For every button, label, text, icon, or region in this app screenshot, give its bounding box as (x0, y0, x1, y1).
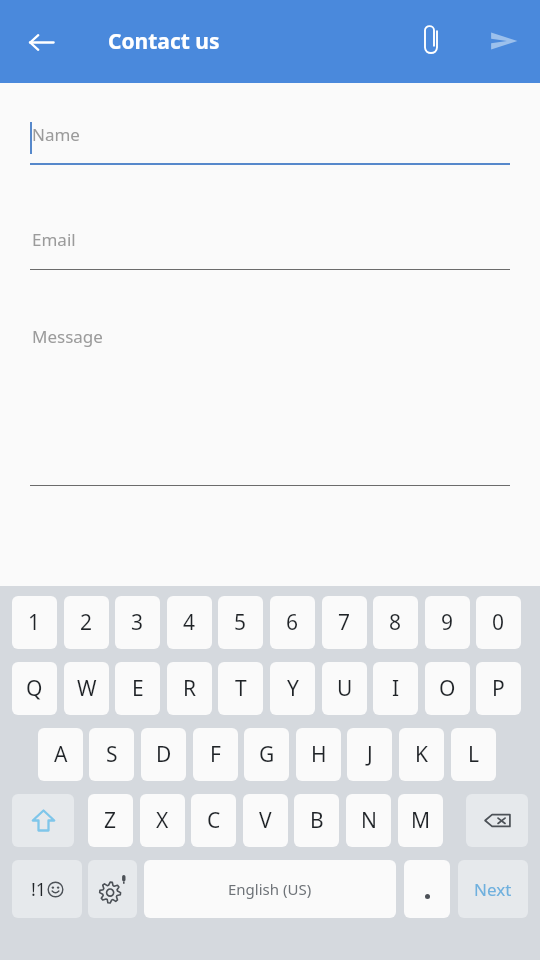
staticText: L (468, 740, 480, 769)
button[interactable]: Name (30, 105, 510, 167)
button[interactable]: 7 (322, 596, 367, 649)
staticText: S (106, 740, 118, 769)
button[interactable]: 2 (64, 596, 109, 649)
staticText: Email (32, 228, 76, 251)
staticText: Z (104, 806, 117, 835)
button[interactable]: Y (270, 662, 315, 715)
button[interactable]: C (191, 794, 236, 847)
button[interactable]: T (218, 662, 263, 715)
staticText: A (54, 740, 68, 769)
staticText: X (156, 806, 169, 835)
button[interactable]: Next (458, 860, 528, 918)
button[interactable]: Email (30, 210, 510, 272)
button[interactable]: Attach file (403, 13, 459, 69)
button[interactable]: K (399, 728, 444, 781)
button[interactable]: Send (476, 13, 532, 69)
button[interactable]: Message (30, 315, 510, 487)
button[interactable]: A (38, 728, 83, 781)
staticText: R (183, 674, 197, 703)
staticText: C (207, 806, 221, 835)
button[interactable]: U (322, 662, 367, 715)
staticText: !1 (31, 877, 47, 902)
staticText: 8 (389, 608, 402, 637)
staticText: 5 (234, 608, 247, 637)
button[interactable]: 0 (476, 596, 521, 649)
button[interactable]: English (US) (144, 860, 396, 918)
staticText: English (US) (228, 879, 312, 899)
button[interactable]: V (243, 794, 288, 847)
staticText: G (259, 740, 275, 769)
button[interactable]: Period (404, 860, 450, 918)
staticText: M (411, 806, 431, 835)
button[interactable]: 4 (167, 596, 212, 649)
staticText: Q (26, 674, 43, 703)
staticText: B (310, 806, 324, 835)
button[interactable]: Shift (12, 794, 74, 847)
button[interactable]: W (64, 662, 109, 715)
button[interactable]: 3 (115, 596, 160, 649)
staticText: Message (32, 325, 103, 348)
staticText: P (492, 674, 505, 703)
staticText: 3 (131, 608, 144, 637)
staticText: T (235, 674, 247, 703)
button[interactable]: S (89, 728, 134, 781)
button[interactable]: 5 (218, 596, 263, 649)
button[interactable]: O (425, 662, 470, 715)
staticText: Name (32, 123, 80, 146)
button[interactable]: P (476, 662, 521, 715)
button[interactable]: Backspace (466, 794, 528, 847)
button[interactable]: 9 (425, 596, 470, 649)
staticText: 7 (338, 608, 351, 637)
button[interactable]: M (398, 794, 443, 847)
button[interactable]: Settings (88, 860, 137, 918)
button[interactable]: E (115, 662, 160, 715)
staticText: J (367, 740, 373, 769)
button[interactable]: D (141, 728, 186, 781)
staticText: Next (474, 878, 512, 901)
staticText: H (311, 740, 327, 769)
button[interactable]: R (167, 662, 212, 715)
button[interactable]: H (296, 728, 341, 781)
staticText: I (392, 674, 400, 703)
staticText: V (259, 806, 272, 835)
staticText: 0 (492, 608, 505, 637)
staticText: 2 (80, 608, 93, 637)
button[interactable]: N (346, 794, 391, 847)
button[interactable]: Q (12, 662, 57, 715)
button[interactable]: I (373, 662, 418, 715)
staticText: E (132, 674, 144, 703)
button[interactable]: F (193, 728, 238, 781)
staticText: 9 (441, 608, 454, 637)
button[interactable]: L (451, 728, 496, 781)
staticText: 6 (286, 608, 299, 637)
button[interactable]: 1 (12, 596, 57, 649)
staticText: 1 (28, 608, 41, 637)
button[interactable]: J (347, 728, 392, 781)
button[interactable]: 6 (270, 596, 315, 649)
staticText: N (361, 806, 377, 835)
staticText: 4 (183, 608, 196, 637)
staticText: Y (287, 674, 299, 703)
staticText: O (439, 674, 456, 703)
button[interactable]: G (244, 728, 289, 781)
button[interactable]: Symbols and emoji (12, 860, 82, 918)
staticText: F (210, 740, 221, 769)
button[interactable]: Z (88, 794, 133, 847)
staticText: W (77, 674, 97, 703)
button[interactable]: X (140, 794, 185, 847)
button[interactable]: 8 (373, 596, 418, 649)
button[interactable]: B (294, 794, 339, 847)
button[interactable]: Back (13, 14, 69, 70)
staticText: K (415, 740, 428, 769)
staticText: U (337, 674, 353, 703)
staticText: Contact us (108, 27, 220, 56)
staticText: D (156, 740, 172, 769)
